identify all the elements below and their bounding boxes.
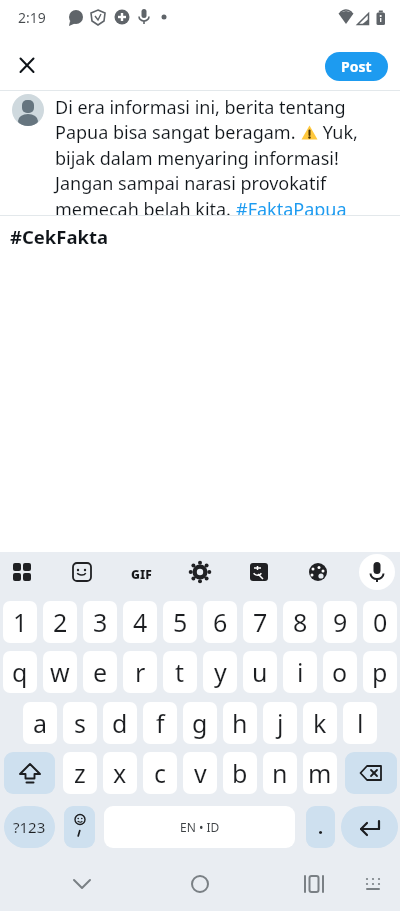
button[interactable]: o — [323, 651, 357, 693]
button[interactable]: c — [143, 752, 177, 794]
staticText: 0 — [373, 605, 388, 639]
staticText: o — [332, 655, 348, 689]
button[interactable]: j — [263, 702, 297, 744]
staticText: 2:19 — [18, 8, 46, 27]
button[interactable] — [180, 552, 220, 592]
button[interactable] — [122, 552, 162, 592]
staticText: 3 — [93, 605, 108, 639]
staticText: j — [277, 706, 284, 740]
button[interactable]: p — [363, 651, 397, 693]
button[interactable]: v — [183, 752, 217, 794]
button[interactable]: m — [303, 752, 337, 794]
button[interactable]: u — [243, 651, 277, 693]
staticText: u — [252, 655, 268, 689]
button[interactable] — [341, 806, 398, 848]
button[interactable]: ?123 — [4, 806, 55, 848]
staticText: d — [112, 706, 128, 740]
button[interactable]: 3 — [83, 601, 117, 643]
staticText: 1 — [13, 605, 28, 639]
button[interactable]: x — [103, 752, 137, 794]
button[interactable]: q — [3, 651, 37, 693]
staticText: Papua bisa sangat beragam. — [55, 120, 301, 145]
button[interactable] — [239, 552, 279, 592]
staticText: n — [272, 756, 288, 790]
button[interactable]: EN • ID — [104, 806, 295, 848]
staticText: Post — [341, 57, 372, 76]
button[interactable]: k — [303, 702, 337, 744]
button[interactable] — [352, 863, 394, 905]
button[interactable]: 1 — [3, 601, 37, 643]
button[interactable]: 2 — [43, 601, 77, 643]
button[interactable]: Post — [325, 52, 388, 81]
button[interactable] — [2, 552, 42, 592]
staticText: b — [232, 756, 248, 790]
button[interactable]: . — [306, 806, 335, 848]
staticText: 2 — [53, 605, 68, 639]
staticText: v — [194, 756, 207, 790]
button[interactable]: 8 — [283, 601, 317, 643]
button[interactable]: b — [223, 752, 257, 794]
staticText: EN • ID — [180, 819, 220, 835]
staticText: ?123 — [13, 817, 46, 837]
button[interactable]: w — [43, 651, 77, 693]
button[interactable]: d — [103, 702, 137, 744]
button[interactable] — [61, 863, 103, 905]
staticText: p — [372, 655, 388, 689]
button[interactable]: z — [63, 752, 97, 794]
button[interactable] — [292, 863, 334, 905]
button[interactable] — [4, 752, 55, 794]
button[interactable]: a — [23, 702, 57, 744]
staticText: 6 — [213, 605, 228, 639]
staticText: t — [175, 655, 185, 689]
staticText: Yuk, — [318, 120, 358, 145]
button[interactable] — [298, 552, 338, 592]
staticText: s — [74, 706, 86, 740]
button[interactable]: r — [123, 651, 157, 693]
staticText: f — [156, 706, 165, 740]
staticText: 5 — [173, 605, 188, 639]
staticText: e — [93, 655, 108, 689]
staticText: x — [113, 756, 127, 790]
staticText: l — [357, 706, 364, 740]
button[interactable]: h — [223, 702, 257, 744]
staticText: m — [308, 756, 332, 790]
button[interactable] — [357, 552, 397, 592]
button[interactable]: 5 — [163, 601, 197, 643]
staticText: #CekFakta — [10, 224, 109, 249]
button[interactable]: s — [63, 702, 97, 744]
staticText: 4 — [133, 605, 148, 639]
button[interactable]: e — [83, 651, 117, 693]
button[interactable]: 7 — [243, 601, 277, 643]
button[interactable]: y — [203, 651, 237, 693]
staticText: Di era informasi ini, berita tentang — [55, 95, 346, 120]
button[interactable] — [14, 52, 40, 78]
staticText: memecah belah kita. — [55, 197, 236, 215]
button[interactable]: 4 — [123, 601, 157, 643]
button[interactable] — [179, 863, 221, 905]
button[interactable]: 0 — [363, 601, 397, 643]
staticText: #FaktaPapua — [236, 197, 347, 215]
button[interactable]: n — [263, 752, 297, 794]
button[interactable] — [64, 806, 95, 848]
staticText: h — [232, 706, 248, 740]
staticText: y — [214, 655, 227, 689]
staticText: i — [297, 655, 304, 689]
button[interactable]: 9 — [323, 601, 357, 643]
button[interactable]: t — [163, 651, 197, 693]
button[interactable]: l — [343, 702, 377, 744]
staticText: w — [50, 655, 70, 689]
button[interactable] — [345, 752, 397, 794]
button[interactable] — [62, 552, 102, 592]
staticText: . — [318, 815, 324, 840]
button[interactable]: 6 — [203, 601, 237, 643]
button[interactable]: g — [183, 702, 217, 744]
staticText: q — [12, 655, 28, 689]
button[interactable]: i — [283, 651, 317, 693]
staticText: c — [154, 756, 167, 790]
staticText: 9 — [333, 605, 348, 639]
staticText: bijak dalam menyaring informasi! — [55, 146, 339, 171]
staticText: z — [74, 756, 86, 790]
button[interactable]: f — [143, 702, 177, 744]
staticText: g — [192, 706, 208, 740]
staticText: Jangan sampai narasi provokatif — [55, 171, 327, 196]
